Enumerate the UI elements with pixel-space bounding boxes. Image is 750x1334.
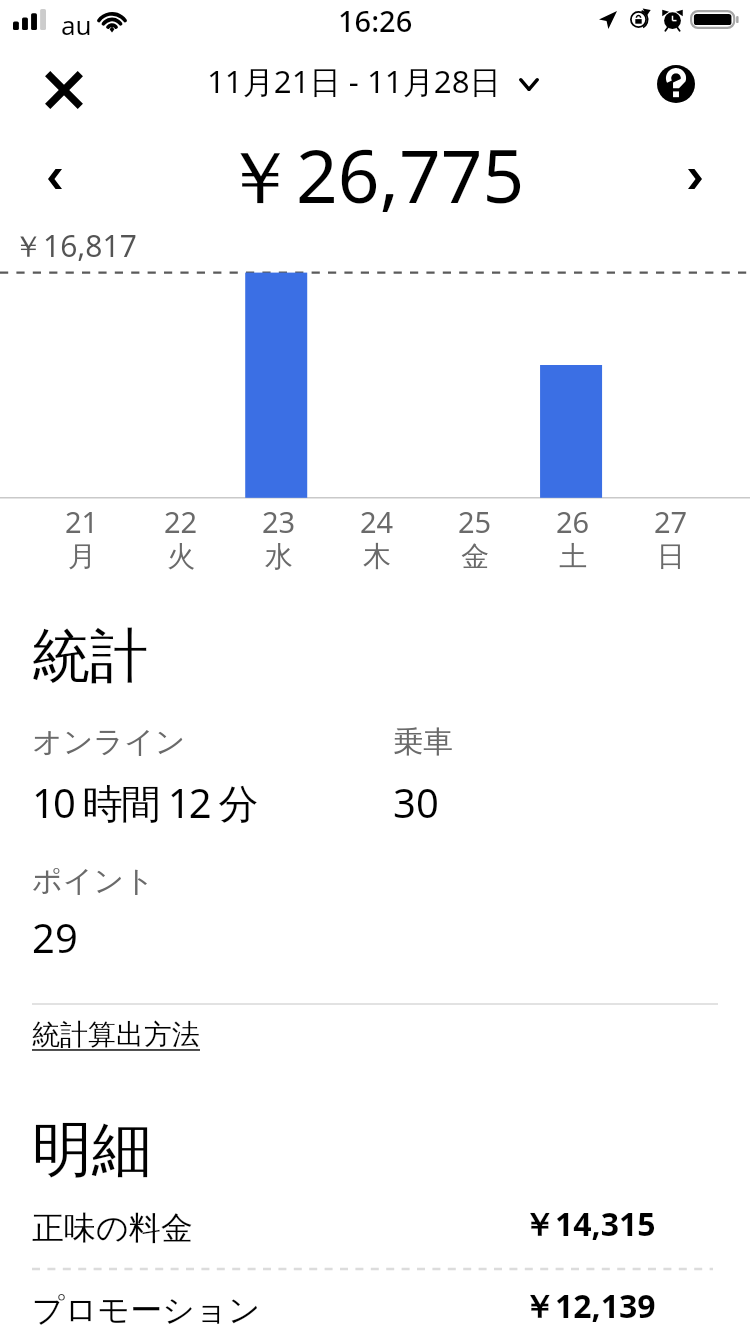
button[interactable]: 21 xyxy=(32,502,131,576)
staticText: オンライン xyxy=(32,723,186,761)
staticText: 22 xyxy=(164,502,198,541)
button[interactable]: 11月21日 - 11月28日 xyxy=(207,60,539,103)
button[interactable]: 24 xyxy=(328,502,426,576)
staticText: 土 xyxy=(559,539,587,574)
staticText: 16:26 xyxy=(338,1,413,40)
staticText: 木 xyxy=(363,539,391,574)
staticText: 25 xyxy=(458,502,492,541)
staticText: ￥26,775 xyxy=(223,125,525,225)
staticText: 明細 xyxy=(32,1112,152,1188)
staticText: 火 xyxy=(167,539,195,574)
button[interactable]: Help xyxy=(630,38,722,130)
button[interactable]: Close xyxy=(18,44,110,136)
button[interactable]: 26 xyxy=(524,502,622,576)
button[interactable]: Next week xyxy=(650,134,740,224)
staticText: 27 xyxy=(654,502,688,541)
staticText: 10 時間 12 分 xyxy=(32,775,257,830)
staticText: ￥12,139 xyxy=(523,1284,656,1328)
button[interactable]: 23 xyxy=(230,502,328,576)
staticText: 26 xyxy=(556,502,590,541)
button[interactable]: 正味の料金 xyxy=(32,1188,718,1268)
staticText: 29 xyxy=(32,910,78,964)
staticText: 日 xyxy=(657,539,685,574)
staticText: 23 xyxy=(262,502,296,541)
button[interactable]: プロモーション xyxy=(32,1270,718,1334)
button[interactable]: 25 xyxy=(426,502,524,576)
staticText: ￥16,817 xyxy=(13,225,137,266)
staticText: 11月21日 - 11月28日 xyxy=(207,60,501,103)
staticText: 金 xyxy=(461,539,489,574)
staticText: 月 xyxy=(68,539,96,574)
staticText: 21 xyxy=(65,502,99,541)
button[interactable]: 27 xyxy=(622,502,720,576)
staticText: 水 xyxy=(265,539,293,574)
button[interactable]: 統計算出方法 xyxy=(32,1017,200,1052)
staticText: 24 xyxy=(360,502,394,541)
button[interactable]: Previous week xyxy=(10,134,100,224)
staticText: 正味の料金 xyxy=(32,1208,193,1248)
staticText: プロモーション xyxy=(32,1290,261,1330)
staticText: ￥14,315 xyxy=(523,1202,656,1246)
staticText: au xyxy=(61,7,92,42)
staticText: 乗車 xyxy=(393,723,453,761)
staticText: ポイント xyxy=(32,862,155,900)
staticText: 30 xyxy=(393,775,439,829)
staticText: 統計 xyxy=(32,620,148,693)
button[interactable]: 22 xyxy=(131,502,230,576)
